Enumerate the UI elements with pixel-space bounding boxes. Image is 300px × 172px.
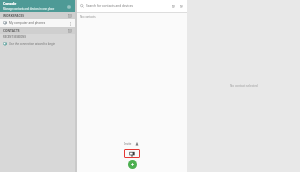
- staticText: Invite: [124, 142, 132, 146]
- button[interactable]: CONTACTS: [0, 27, 75, 34]
- button[interactable]: Add: [178, 3, 184, 9]
- button[interactable]: Use the connection wizard to begin: [0, 40, 75, 48]
- staticText: Manage contacts and devices in one place: [3, 7, 55, 11]
- button[interactable]: WORKSPACES: [0, 12, 75, 19]
- button[interactable]: Add device: [124, 149, 140, 158]
- staticText: CONTACTS: [3, 29, 67, 33]
- button[interactable]: Console: [0, 0, 75, 12]
- staticText: My computer and phones: [9, 21, 69, 25]
- button[interactable]: Add contact: [67, 28, 72, 33]
- staticText: WORKSPACES: [3, 14, 67, 18]
- button[interactable]: Search for contacts and devices: [77, 0, 187, 12]
- staticText: Console: [3, 1, 17, 6]
- staticText: RECENT SESSIONS: [3, 35, 26, 39]
- staticText: Search for contacts and devices: [86, 4, 170, 8]
- staticText: Use the connection wizard to begin: [9, 42, 56, 46]
- staticText: No contact selected: [230, 84, 258, 88]
- button[interactable]: My computer and phones: [0, 19, 75, 27]
- button[interactable]: Settings: [65, 3, 72, 10]
- button[interactable]: More options: [69, 21, 72, 26]
- button[interactable]: Filter: [170, 3, 176, 9]
- button[interactable]: Invite contact: [134, 141, 140, 147]
- staticText: No contacts: [80, 15, 96, 19]
- button[interactable]: New session: [128, 160, 137, 169]
- button[interactable]: Add workspace: [67, 13, 72, 18]
